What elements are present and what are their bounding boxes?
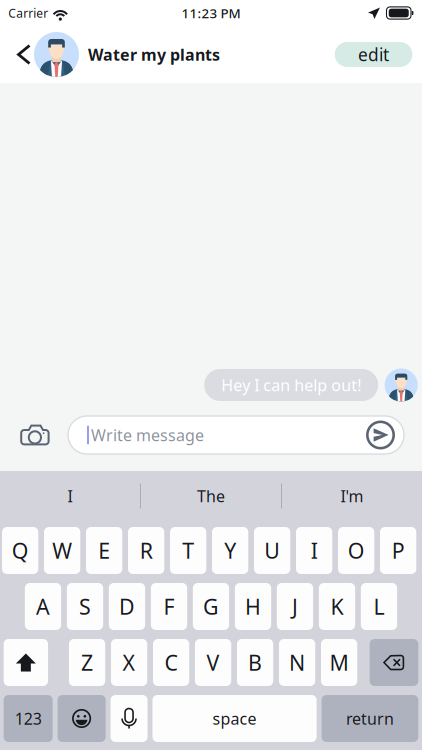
staticText: B [248,648,262,677]
staticText: D [119,592,135,621]
button[interactable]: V [195,639,231,686]
button[interactable]: O [338,527,374,574]
button[interactable]: X [111,639,147,686]
staticText: edit [358,43,389,66]
button[interactable]: space [152,695,317,742]
staticText: 123 [15,708,42,729]
button[interactable]: 123 [4,695,53,742]
button[interactable]: D [109,583,145,630]
staticText: I [67,485,72,507]
button[interactable]: T [170,527,206,574]
button[interactable]: L [361,583,397,630]
staticText: P [392,536,405,565]
staticText: O [348,536,365,565]
button[interactable]: N [279,639,315,686]
button[interactable]: E [86,527,122,574]
staticText: A [36,592,50,621]
button[interactable]: Y [212,527,248,574]
staticText: Carrier [8,5,48,21]
staticText: 11:23 PM [181,4,240,22]
staticText: S [79,592,91,621]
staticText: E [98,536,110,565]
staticText: X [123,648,136,677]
button[interactable]: Camera [20,416,51,454]
button[interactable]: return [321,695,418,742]
button[interactable]: J [277,583,313,630]
staticText: I'm [340,485,363,507]
button[interactable]: M [321,639,357,686]
button[interactable]: P [380,527,416,574]
staticText: G [203,592,219,621]
staticText: L [373,592,384,621]
button[interactable]: R [128,527,164,574]
staticText: Water my plants [88,44,220,65]
staticText: C [165,648,178,677]
button[interactable]: A [25,583,61,630]
staticText: The [197,485,225,507]
staticText: Y [224,536,236,565]
button[interactable]: Delete [370,639,418,686]
staticText: M [330,648,349,677]
staticText: I [311,536,318,565]
staticText: Hey I can help out! [221,374,361,396]
staticText: T [182,536,194,565]
button[interactable]: B [237,639,273,686]
button[interactable]: Dictate [111,695,148,742]
staticText: space [213,708,257,729]
button[interactable]: I [296,527,332,574]
button[interactable]: S [67,583,103,630]
button[interactable]: G [193,583,229,630]
button[interactable]: C [153,639,189,686]
staticText: return [346,708,394,729]
staticText: U [264,536,280,565]
staticText: Z [81,648,93,677]
button[interactable]: edit [335,42,412,67]
button[interactable]: Back [0,27,31,81]
button[interactable]: Shift [4,639,48,686]
staticText: K [330,592,343,621]
button[interactable]: K [319,583,355,630]
button[interactable]: Emoji [58,695,106,742]
staticText: V [207,648,220,677]
button[interactable]: U [254,527,290,574]
staticText: H [245,592,261,621]
staticText: N [289,648,305,677]
staticText: Write message [91,424,204,446]
button[interactable]: W [44,527,80,574]
staticText: R [140,536,153,565]
staticText: F [163,592,174,621]
button[interactable]: F [151,583,187,630]
staticText: Q [12,536,29,565]
button[interactable]: Z [69,639,105,686]
button[interactable]: Q [2,527,38,574]
button[interactable]: H [235,583,271,630]
staticText: W [52,536,72,565]
staticText: J [292,592,298,621]
